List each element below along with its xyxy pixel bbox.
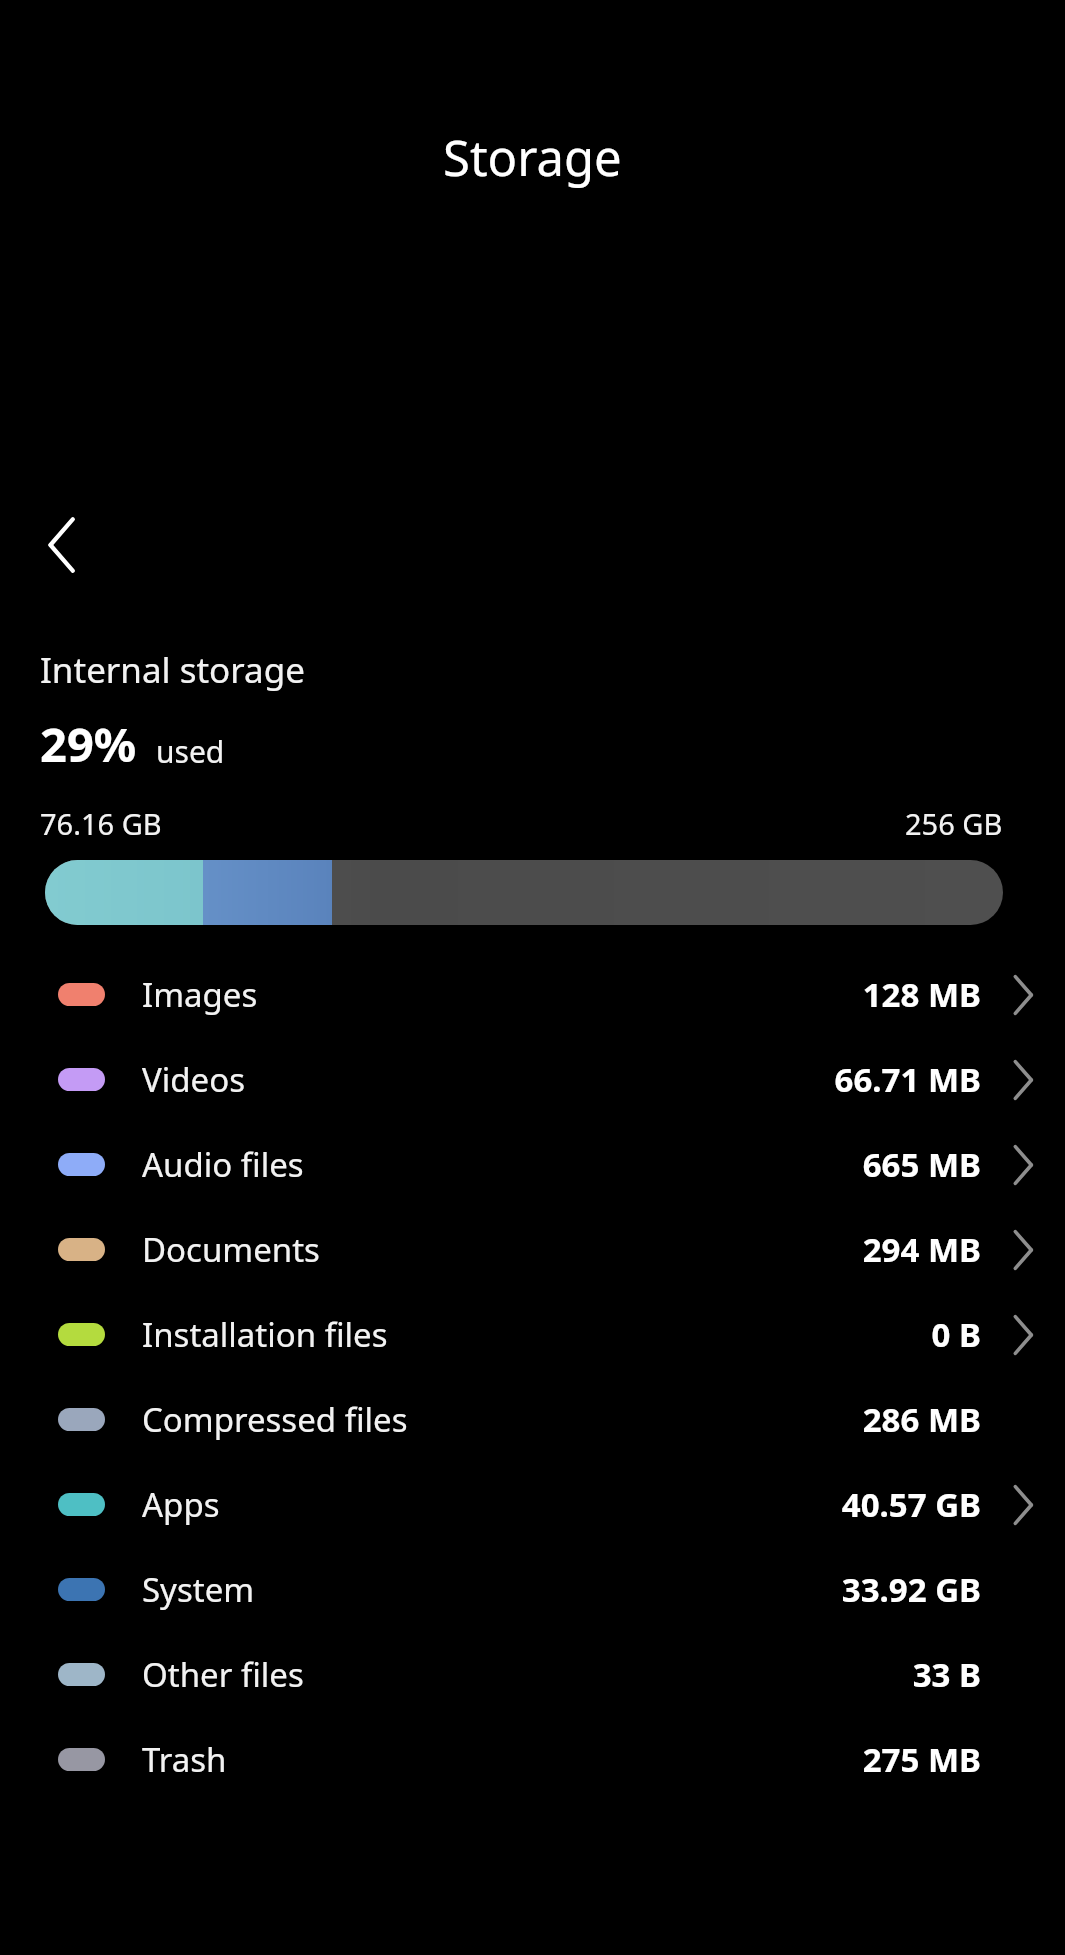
staticText: Installation files xyxy=(142,1312,931,1357)
staticText: Videos xyxy=(142,1057,834,1102)
staticText: Images xyxy=(142,972,862,1017)
staticText: Documents xyxy=(142,1227,862,1272)
staticText: 33.92 GB xyxy=(841,1567,981,1612)
button[interactable]: Installation files xyxy=(0,1292,1065,1377)
button[interactable]: System xyxy=(0,1547,1065,1632)
staticText: 294 MB xyxy=(862,1227,981,1272)
staticText: Apps xyxy=(142,1482,841,1527)
staticText: 0 B xyxy=(931,1312,981,1357)
staticText: used xyxy=(156,731,225,772)
staticText: 76.16 GB xyxy=(40,804,162,843)
button[interactable]: Back xyxy=(26,501,98,589)
staticText: 40.57 GB xyxy=(841,1482,981,1527)
button[interactable]: Documents xyxy=(0,1207,1065,1292)
button[interactable]: Trash xyxy=(0,1717,1065,1802)
staticText: 128 MB xyxy=(862,972,981,1017)
staticText: System xyxy=(142,1567,841,1612)
button[interactable]: Audio files xyxy=(0,1122,1065,1207)
staticText: 665 MB xyxy=(862,1142,981,1187)
staticText: Storage xyxy=(443,124,622,191)
staticText: Trash xyxy=(142,1737,862,1782)
staticText: Compressed files xyxy=(142,1397,862,1442)
staticText: Audio files xyxy=(142,1142,862,1187)
staticText: Internal storage xyxy=(40,646,305,694)
staticText: 29% xyxy=(40,712,137,776)
button[interactable]: Compressed files xyxy=(0,1377,1065,1462)
staticText: 66.71 MB xyxy=(834,1057,981,1102)
staticText: Other files xyxy=(142,1652,912,1697)
staticText: 275 MB xyxy=(862,1737,981,1782)
button[interactable]: Images xyxy=(0,952,1065,1037)
button[interactable]: Videos xyxy=(0,1037,1065,1122)
staticText: 286 MB xyxy=(862,1397,981,1442)
staticText: 256 GB xyxy=(905,804,1003,843)
button[interactable]: Apps xyxy=(0,1462,1065,1547)
staticText: 33 B xyxy=(912,1652,981,1697)
button[interactable]: Other files xyxy=(0,1632,1065,1717)
